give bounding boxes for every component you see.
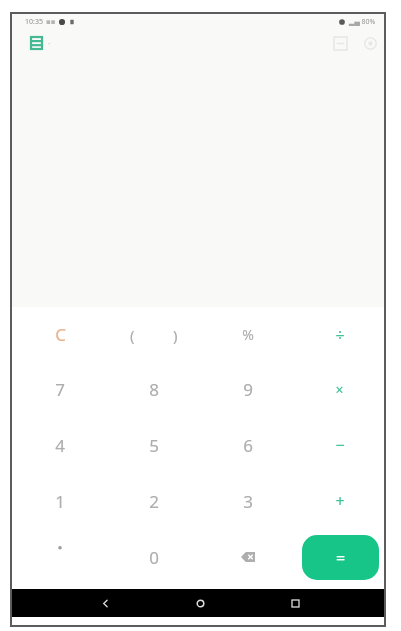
button[interactable]: 6: [201, 417, 295, 473]
button[interactable]: 1: [13, 473, 107, 529]
staticText: 7: [55, 378, 65, 401]
button[interactable]: 4: [13, 417, 107, 473]
staticText: 2: [149, 490, 159, 513]
button[interactable]: Settings: [360, 33, 380, 53]
staticText: %: [242, 325, 254, 344]
staticText: ÷: [335, 324, 345, 346]
staticText: 8: [149, 378, 159, 401]
button[interactable]: 5: [107, 417, 201, 473]
staticText: ×: [335, 380, 344, 399]
staticText: =: [336, 547, 346, 569]
staticText: 6: [243, 434, 253, 457]
button[interactable]: Home: [170, 589, 230, 617]
button[interactable]: Backspace: [201, 529, 295, 585]
staticText: ▂▄ 80%: [349, 17, 376, 27]
button[interactable]: ÷: [295, 307, 384, 362]
button[interactable]: +: [295, 473, 384, 529]
button[interactable]: Scientific mode: [330, 33, 350, 53]
button[interactable]: (: [107, 307, 201, 362]
button[interactable]: Recent apps: [265, 589, 325, 617]
staticText: 3: [243, 490, 253, 513]
staticText: 10:35: [25, 17, 43, 27]
staticText: 9: [243, 378, 253, 401]
button[interactable]: %: [201, 307, 295, 362]
staticText: ): [173, 325, 178, 345]
staticText: ▪▪: [46, 18, 56, 26]
button[interactable]: =: [302, 535, 379, 580]
button[interactable]: History: [26, 33, 46, 53]
staticText: C: [55, 323, 66, 346]
button[interactable]: Decimal point: [13, 529, 107, 585]
staticText: 1: [55, 490, 65, 513]
button[interactable]: ×: [295, 362, 384, 417]
button[interactable]: 7: [13, 362, 107, 417]
staticText: 0: [149, 546, 159, 569]
button[interactable]: 9: [201, 362, 295, 417]
button[interactable]: 3: [201, 473, 295, 529]
staticText: +: [335, 490, 345, 512]
staticText: (: [130, 325, 135, 345]
button[interactable]: C: [13, 307, 107, 362]
button[interactable]: Back: [75, 589, 135, 617]
button[interactable]: −: [295, 417, 384, 473]
staticText: ·: [48, 37, 51, 49]
button[interactable]: 8: [107, 362, 201, 417]
staticText: −: [335, 434, 345, 456]
staticText: 4: [55, 434, 65, 457]
button[interactable]: 2: [107, 473, 201, 529]
staticText: 5: [149, 434, 159, 457]
button[interactable]: 0: [107, 529, 201, 585]
